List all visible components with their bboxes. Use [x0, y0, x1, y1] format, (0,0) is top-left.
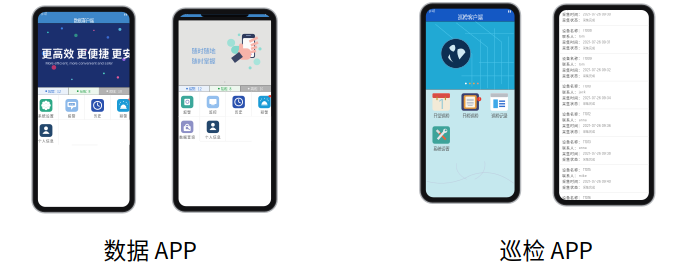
button[interactable]: 历史: [232, 92, 245, 116]
staticText: ▮▮: [507, 10, 511, 13]
staticText: 9:41: [429, 9, 435, 13]
button[interactable]: 报警：12: [179, 86, 209, 92]
button[interactable]: 系统设置: [427, 126, 456, 152]
button[interactable]: 数据查询: [179, 116, 195, 141]
staticText: 1: [479, 97, 480, 101]
staticText: More efficient, more convenient and safe…: [45, 61, 112, 65]
staticText: 数据客户端: [74, 17, 94, 23]
staticText: 联系人：: [562, 89, 578, 95]
staticText: 采集完成: [583, 102, 595, 106]
staticText: 设备名称：: [562, 139, 582, 145]
button[interactable]: 报警: [181, 92, 193, 116]
staticText: 联系人：: [562, 62, 578, 67]
staticText: 采集时间：: [562, 95, 582, 100]
staticText: T1012: [583, 112, 591, 116]
staticText: 报警: [68, 113, 76, 118]
staticText: 在线：8: [221, 86, 232, 91]
staticText: ▮ ▮: [265, 12, 268, 15]
button[interactable]: 监控: [207, 92, 219, 116]
staticText: 联系人：: [562, 117, 578, 123]
button[interactable]: 系统设置: [38, 95, 54, 120]
button[interactable]: 设备名称：: [559, 193, 649, 220]
button[interactable]: 设备名称：: [559, 26, 649, 53]
staticText: 在线：8: [79, 89, 90, 94]
staticText: 采集时间：: [562, 151, 582, 156]
staticText: T1015: [583, 168, 591, 172]
staticText: 采集状态：: [562, 157, 582, 162]
staticText: 巡检客户端: [458, 13, 483, 21]
staticText: 系统设置: [38, 113, 54, 118]
staticText: 采集状态：: [562, 101, 582, 106]
staticText: jack: [579, 90, 586, 94]
staticText: 联系人：: [562, 6, 578, 11]
button[interactable]: 设备名称：: [559, 165, 649, 192]
staticText: 采集时间：: [562, 40, 582, 45]
staticText: 联系人：: [562, 145, 578, 150]
button[interactable]: 设备名称：: [559, 0, 649, 25]
staticText: 2021-07-26 09:36: [583, 124, 611, 128]
staticText: 个人信息: [38, 138, 54, 144]
staticText: 设备名称：: [562, 195, 582, 200]
button[interactable]: 1: [427, 93, 456, 119]
staticText: 2021-07-26 09:38: [583, 152, 611, 156]
staticText: 联系人：: [562, 34, 578, 39]
staticText: 采集状态：: [562, 240, 582, 246]
staticText: 采集完成: [583, 185, 595, 189]
staticText: 采集时间：: [562, 123, 582, 128]
button[interactable]: 在线：8: [68, 87, 99, 95]
button[interactable]: 报警：12: [38, 87, 68, 95]
button[interactable]: 历史: [91, 95, 104, 120]
button[interactable]: 个人信息: [205, 116, 221, 141]
staticText: 采集完成: [583, 18, 595, 22]
staticText: 个人信息: [205, 134, 221, 140]
staticText: 采集完成: [583, 129, 595, 134]
staticText: mike: [579, 174, 587, 178]
staticText: anna: [579, 118, 587, 122]
staticText: 设备名称：: [562, 111, 582, 117]
staticText: 巡检记录: [491, 112, 507, 119]
button[interactable]: 设备名称：: [559, 221, 649, 248]
button[interactable]: 设备名称：: [559, 109, 649, 137]
button[interactable]: 在线：8: [209, 86, 240, 92]
staticText: 采集状态：: [562, 73, 582, 78]
button[interactable]: 预警: [117, 95, 130, 120]
staticText: 设备名称：: [562, 167, 582, 172]
staticText: T1013: [583, 140, 591, 144]
button[interactable]: 巡检记录: [485, 93, 514, 119]
button[interactable]: 设备名称：: [559, 53, 649, 81]
button[interactable]: 预警: [258, 92, 271, 116]
staticText: 随时掌握: [192, 56, 216, 65]
button[interactable]: 设备名称：: [559, 81, 649, 109]
staticText: 9:41: [182, 12, 188, 15]
staticText: T1008: [583, 29, 592, 33]
staticText: 采集时间：: [562, 179, 582, 184]
staticText: 采集状态：: [562, 185, 582, 190]
staticText: 更高效 更便捷 更安全: [41, 45, 144, 61]
staticText: tom: [579, 62, 585, 66]
button[interactable]: 离线：10: [99, 87, 129, 95]
staticText: 采集完成: [583, 241, 595, 245]
staticText: 日常巡检: [433, 112, 449, 119]
button[interactable]: 离线：10: [240, 86, 271, 92]
staticText: T1016: [583, 196, 591, 200]
button[interactable]: 日检巡检: [456, 93, 485, 119]
staticText: 历史: [235, 110, 243, 115]
button[interactable]: 设备名称：: [559, 137, 649, 164]
button[interactable]: 个人信息: [38, 120, 54, 145]
staticText: 数据 APP: [103, 233, 196, 265]
staticText: 巡检 APP: [499, 233, 592, 265]
button[interactable]: 报警: [65, 95, 78, 120]
staticText: 日检巡检: [462, 112, 478, 119]
staticText: mike: [579, 201, 587, 205]
staticText: 联系人：: [562, 173, 578, 178]
